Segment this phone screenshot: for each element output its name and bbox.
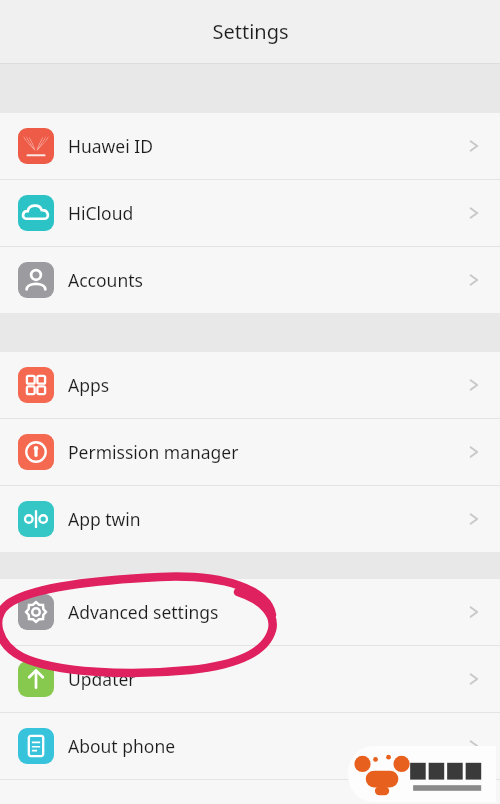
- button[interactable]: Updater: [0, 646, 500, 712]
- button[interactable]: App twin: [0, 486, 500, 552]
- button[interactable]: Huawei ID: [0, 113, 500, 179]
- staticText: About phone: [68, 734, 176, 758]
- staticText: Settings: [212, 18, 289, 45]
- staticText: Permission manager: [68, 440, 239, 464]
- staticText: Advanced settings: [68, 600, 219, 624]
- staticText: Accounts: [68, 268, 143, 292]
- button[interactable]: HiCloud: [0, 180, 500, 246]
- staticText: HiCloud: [68, 201, 134, 225]
- staticText: App twin: [68, 507, 141, 531]
- button[interactable]: Permission manager: [0, 419, 500, 485]
- staticText: Huawei ID: [68, 134, 153, 158]
- button[interactable]: About phone: [0, 713, 500, 779]
- button[interactable]: Accounts: [0, 247, 500, 313]
- staticText: Updater: [68, 667, 136, 691]
- button[interactable]: Apps: [0, 352, 500, 418]
- button[interactable]: Advanced settings: [0, 579, 500, 645]
- staticText: Apps: [68, 373, 110, 397]
